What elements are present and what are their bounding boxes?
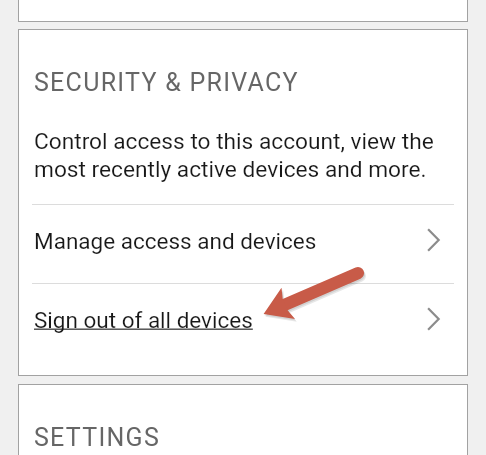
staticText: SECURITY & PRIVACY — [34, 68, 299, 97]
other: Open Sign out of all devices — [427, 307, 440, 331]
staticText: Sign out of all devices — [34, 307, 427, 333]
staticText: Control access to this account, view the… — [34, 128, 434, 183]
staticText: Manage access and devices — [34, 228, 427, 254]
other: Open Manage access and devices — [427, 228, 440, 252]
button[interactable]: Sign out of all devices — [19, 284, 467, 363]
staticText: SETTINGS — [34, 423, 161, 452]
button[interactable]: Manage access and devices — [19, 205, 467, 284]
